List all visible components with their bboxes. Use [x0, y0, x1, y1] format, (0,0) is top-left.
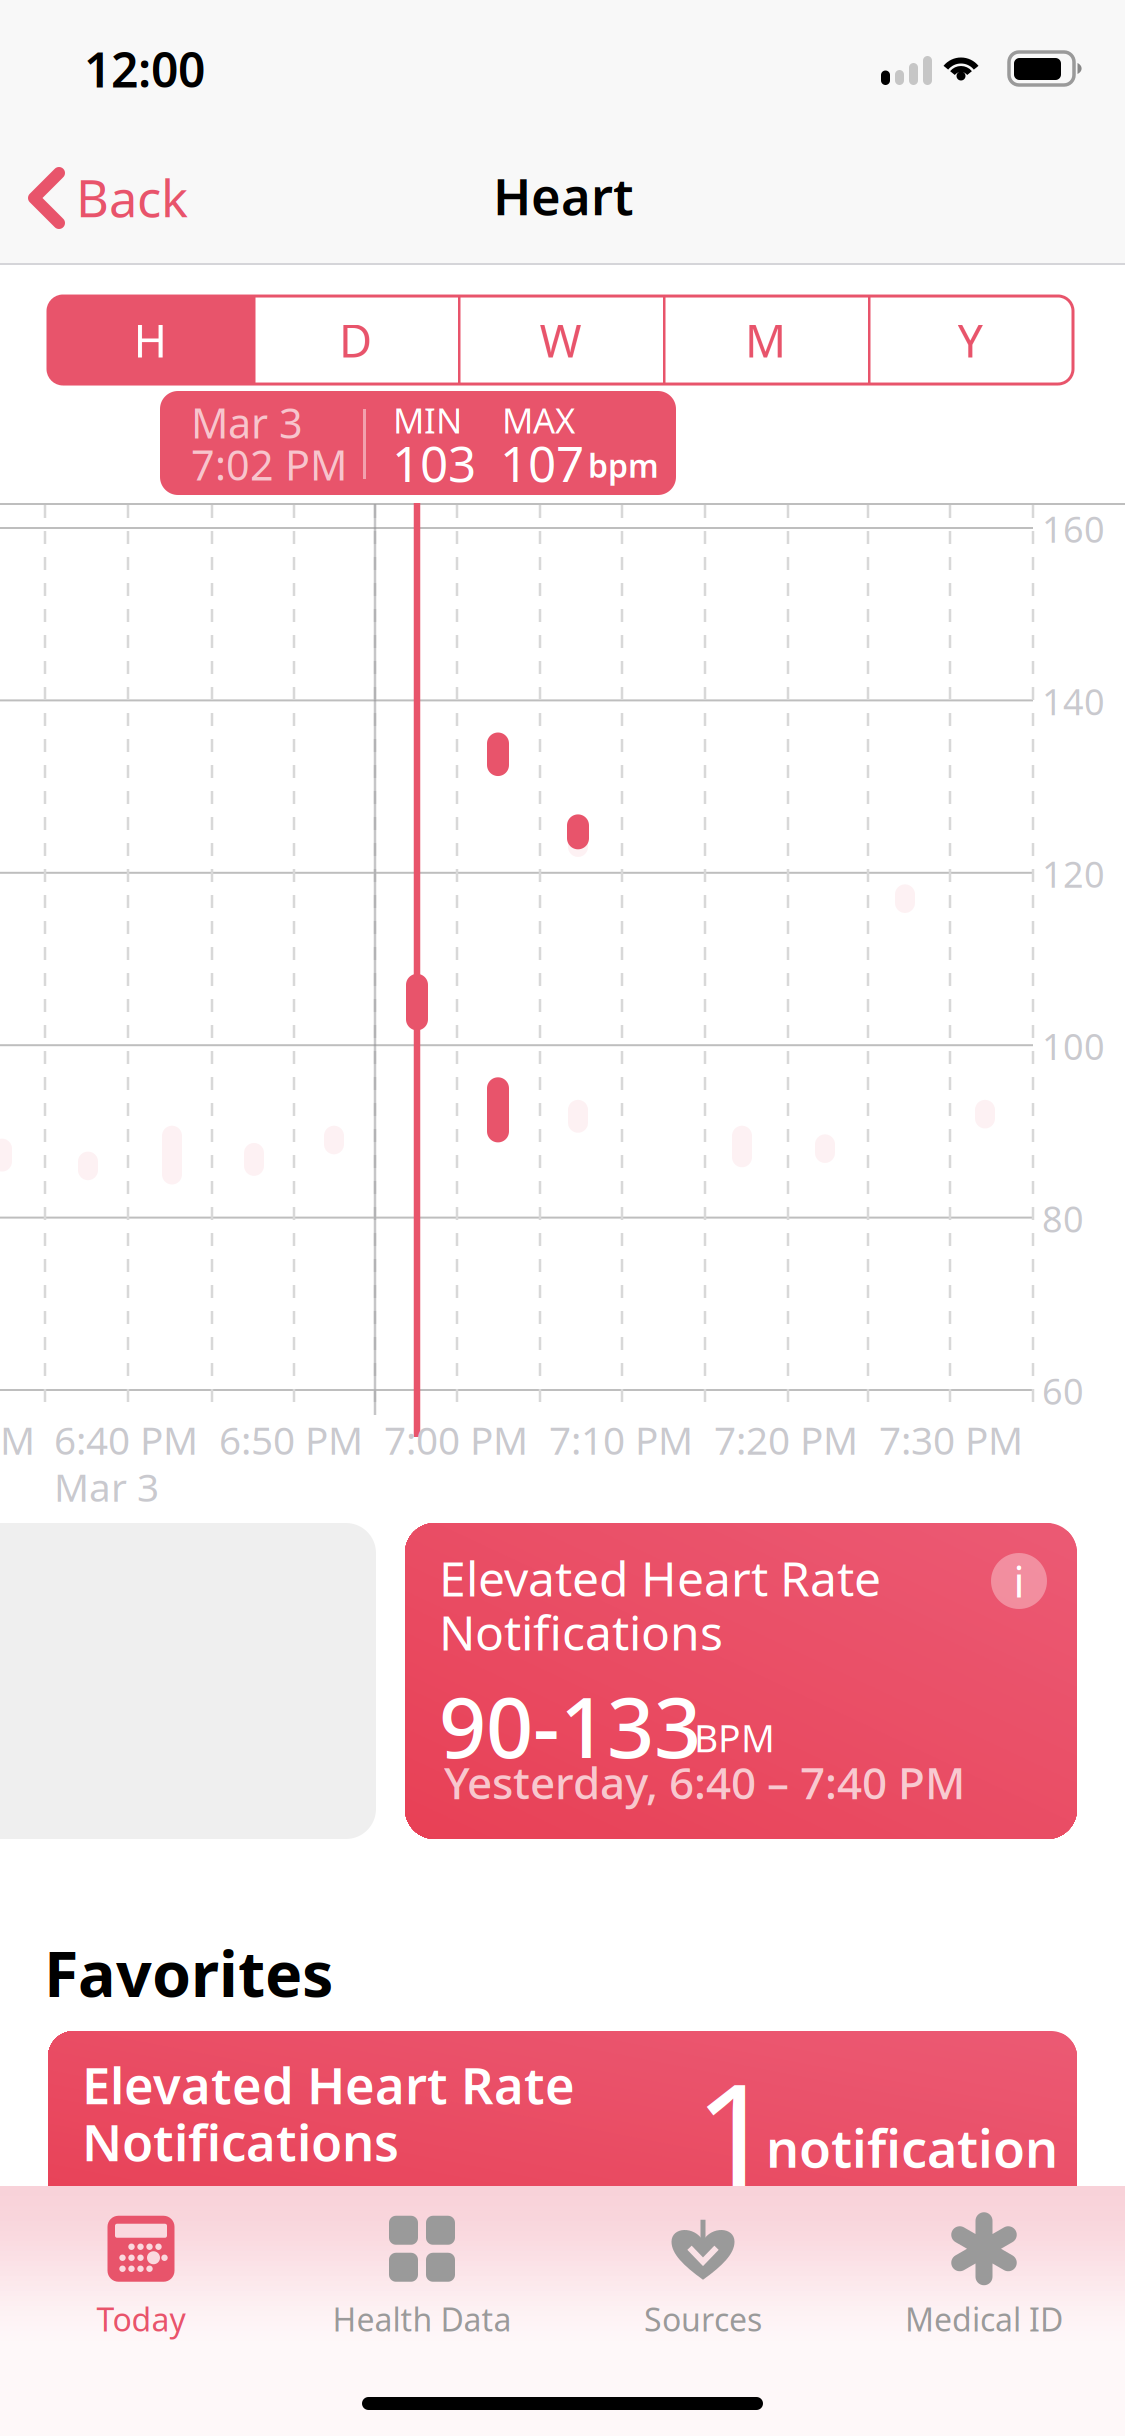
button[interactable]: Y — [868, 296, 1073, 384]
staticText: Notifications — [82, 2108, 399, 2175]
staticText: 6:50 PM — [219, 1414, 363, 1465]
staticText: 107 — [500, 430, 584, 495]
button[interactable]: Today — [0, 2208, 281, 2348]
staticText: 90-133 — [439, 1671, 701, 1781]
staticText: MIN — [393, 397, 462, 443]
staticText: 7:02 PM — [191, 437, 347, 492]
button[interactable]: D — [253, 296, 458, 384]
button[interactable]: W — [458, 296, 663, 384]
staticText: BPM — [694, 1713, 775, 1763]
staticText: 12:00 — [84, 37, 205, 101]
staticText: Yesterday, 6:40 – 7:40 PM — [444, 1753, 965, 1811]
staticText: H — [133, 310, 167, 370]
button[interactable]: Elevated Heart Rate — [48, 2031, 1077, 2231]
button[interactable]: Health Data — [281, 2208, 562, 2348]
staticText: Favorites — [44, 1931, 333, 2014]
staticText: D — [339, 310, 372, 370]
staticText: 120 — [1042, 850, 1105, 898]
staticText: 7:30 PM — [879, 1414, 1023, 1465]
staticText: Today — [96, 2298, 185, 2340]
staticText: 80 — [1042, 1195, 1084, 1242]
staticText: Mar 3 — [54, 1461, 159, 1512]
button[interactable]: Back — [6, 148, 196, 248]
staticText: Notifications — [439, 1600, 723, 1664]
staticText: 7:00 PM — [384, 1414, 528, 1465]
staticText: 6:40 PM — [54, 1414, 198, 1465]
staticText: M — [0, 1414, 35, 1465]
button[interactable]: Medical ID — [843, 2208, 1124, 2348]
button[interactable]: H — [48, 296, 253, 384]
staticText: Elevated Heart Rate — [82, 2051, 575, 2118]
staticText: Health Data — [332, 2298, 511, 2340]
staticText: 7:10 PM — [549, 1414, 693, 1465]
staticText: Mar 3 — [191, 395, 303, 450]
staticText: M — [745, 310, 786, 370]
staticText: Heart — [493, 162, 634, 229]
staticText: MAX — [502, 397, 575, 443]
button[interactable]: Sources — [562, 2208, 843, 2348]
staticText: notification — [766, 2113, 1058, 2182]
staticText: bpm — [588, 444, 659, 486]
button[interactable]: Elevated Heart Rate — [405, 1523, 1077, 1839]
staticText: 7:20 PM — [714, 1414, 858, 1465]
staticText: W — [539, 310, 581, 370]
staticText: 1 — [694, 2037, 776, 2228]
staticText: 100 — [1042, 1022, 1105, 1070]
staticText: Medical ID — [905, 2298, 1063, 2340]
staticText: Sources — [644, 2298, 762, 2340]
staticText: Back — [76, 164, 188, 231]
staticText: i — [1013, 1553, 1024, 1609]
staticText: 103 — [392, 430, 476, 495]
staticText: 160 — [1042, 505, 1105, 553]
staticText: Y — [957, 310, 983, 370]
button[interactable]: M — [663, 296, 868, 384]
staticText: Elevated Heart Rate — [439, 1546, 881, 1610]
staticText: 60 — [1042, 1367, 1084, 1415]
staticText: 140 — [1042, 677, 1105, 725]
